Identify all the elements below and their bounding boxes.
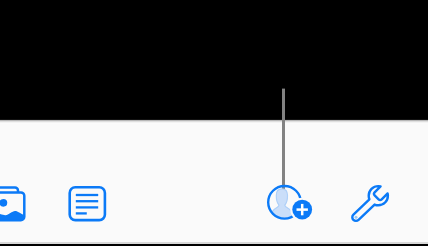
button[interactable]: Notes (63, 183, 111, 231)
button[interactable]: Photo library (0, 183, 35, 231)
button[interactable]: Add contact (260, 178, 314, 232)
button[interactable]: Settings (345, 179, 393, 227)
